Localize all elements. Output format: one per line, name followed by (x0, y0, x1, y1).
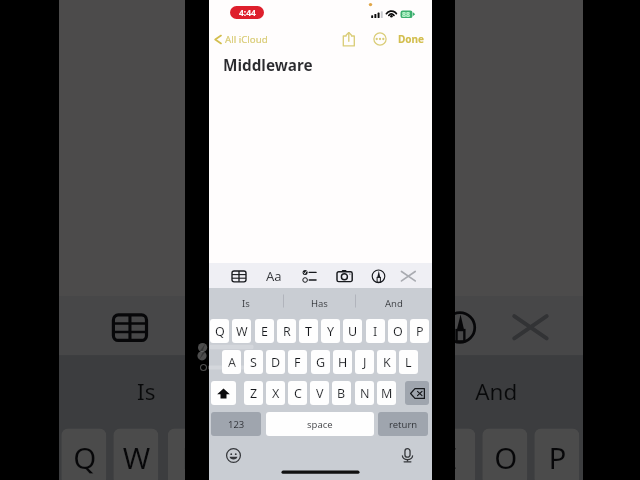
button[interactable]: Hide keyboard (397, 265, 419, 287)
staticText: C (294, 385, 302, 402)
button[interactable]: Dictate (399, 447, 416, 464)
button[interactable]: Done (398, 32, 425, 46)
button[interactable]: Camera (333, 265, 356, 287)
staticText: Aa (266, 267, 282, 285)
other: Checklist (269, 301, 321, 353)
button[interactable]: Emoji (226, 448, 241, 463)
button[interactable]: Q (210, 319, 229, 343)
button[interactable]: Aa (263, 265, 285, 287)
button[interactable]: And (356, 293, 432, 313)
button[interactable]: Is (209, 293, 283, 313)
button[interactable]: S (244, 350, 263, 374)
button[interactable]: E (255, 319, 274, 343)
other: Insert table (94, 301, 146, 353)
staticText: U (348, 323, 358, 340)
staticText: Z (250, 385, 258, 402)
button[interactable]: Y (321, 319, 340, 343)
button[interactable]: W (232, 319, 251, 343)
button[interactable]: 123 (211, 412, 261, 436)
button[interactable]: F (288, 350, 307, 374)
staticText: J (363, 354, 367, 371)
button[interactable]: All iCloud (211, 29, 271, 49)
staticText: R (283, 323, 291, 340)
button[interactable]: M (377, 381, 396, 405)
button[interactable]: B (332, 381, 351, 405)
button[interactable]: Has (284, 293, 355, 313)
staticText: Done (398, 32, 425, 46)
staticText: P (416, 323, 424, 340)
staticText: H (338, 354, 348, 371)
other: Markup (433, 301, 485, 353)
button[interactable]: Insert table (224, 265, 246, 287)
button[interactable]: X (266, 381, 285, 405)
staticText: Y (327, 323, 335, 340)
button[interactable]: O (388, 319, 407, 343)
staticText: 123 (228, 418, 245, 431)
staticText: space (307, 418, 333, 431)
staticText: return (389, 418, 418, 431)
staticText: U (388, 438, 411, 478)
button[interactable]: I (366, 319, 385, 343)
staticText: V (316, 385, 324, 402)
staticText: Is (242, 297, 250, 310)
staticText: A (228, 354, 236, 371)
button[interactable]: Shift (211, 381, 236, 405)
button[interactable]: G (311, 350, 330, 374)
staticText: All iCloud (225, 33, 268, 46)
staticText: F (294, 354, 301, 371)
staticText: W (236, 323, 248, 340)
button[interactable]: U (343, 319, 362, 343)
button[interactable]: Share (340, 29, 358, 47)
button[interactable]: T (299, 319, 318, 343)
staticText: G (316, 354, 326, 371)
staticText: Y (338, 438, 357, 478)
button[interactable]: V (310, 381, 329, 405)
staticText: O (494, 438, 518, 478)
staticText: E (261, 323, 268, 340)
staticText: I (447, 438, 459, 478)
staticText: L (405, 354, 412, 371)
staticText: R (234, 438, 253, 478)
staticText: Q (73, 438, 97, 478)
button[interactable]: space (266, 412, 374, 436)
button[interactable]: Backspace (405, 381, 429, 405)
staticText: Has (300, 376, 340, 407)
staticText: Is (137, 376, 156, 407)
button[interactable]: Checklist (298, 265, 320, 287)
button[interactable]: return (378, 412, 428, 436)
staticText: I (373, 323, 378, 340)
staticText: 4:44 (239, 7, 256, 19)
staticText: Q (215, 323, 225, 340)
staticText: Has (311, 297, 328, 310)
staticText: E (182, 438, 199, 478)
button[interactable]: Markup (367, 265, 389, 287)
staticText: M (381, 385, 393, 402)
button[interactable]: D (266, 350, 285, 374)
button[interactable]: H (333, 350, 352, 374)
button[interactable]: Z (244, 381, 263, 405)
staticText: X (272, 385, 280, 402)
staticText: W (123, 438, 151, 478)
staticText: K (383, 354, 391, 371)
staticText: Middleware (223, 55, 313, 76)
staticText: And (475, 376, 518, 407)
button[interactable]: More options (373, 32, 387, 46)
staticText: B (337, 385, 346, 402)
button[interactable]: L (399, 350, 418, 374)
button[interactable]: J (355, 350, 374, 374)
staticText: N (360, 385, 370, 402)
staticText: P (549, 438, 567, 478)
staticText: T (286, 438, 303, 478)
button[interactable]: K (377, 350, 396, 374)
staticText: S (250, 354, 257, 371)
button[interactable]: N (355, 381, 374, 405)
button[interactable]: R (277, 319, 296, 343)
button[interactable]: A (222, 350, 241, 374)
button[interactable]: C (288, 381, 307, 405)
other: Camera (352, 301, 407, 353)
staticText: D (271, 354, 281, 371)
button[interactable]: P (410, 319, 429, 343)
staticText: T (305, 323, 312, 340)
staticText: O (393, 323, 403, 340)
staticText: And (385, 297, 403, 310)
